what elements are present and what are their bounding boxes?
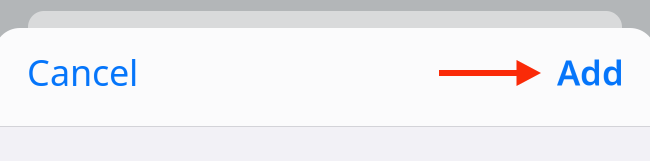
staticText: Cancel — [27, 48, 138, 96]
button[interactable]: Add — [557, 49, 624, 95]
staticText: Add — [557, 49, 624, 95]
button[interactable]: Cancel — [27, 48, 138, 96]
